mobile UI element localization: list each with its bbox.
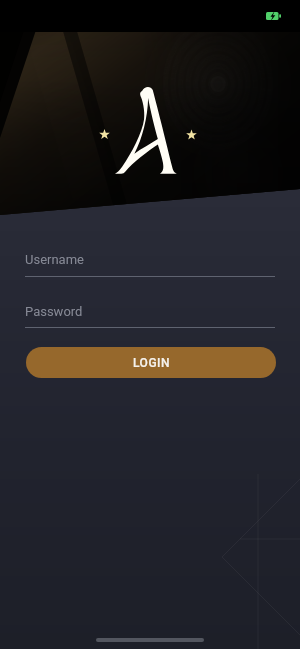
- other: Battery charging: [266, 12, 281, 20]
- staticText: Username: [25, 252, 84, 267]
- button[interactable]: LOGIN: [26, 347, 276, 378]
- button[interactable]: Password: [25, 300, 275, 328]
- staticText: LOGIN: [133, 356, 170, 370]
- button[interactable]: Username: [25, 248, 275, 276]
- staticText: Password: [25, 304, 83, 319]
